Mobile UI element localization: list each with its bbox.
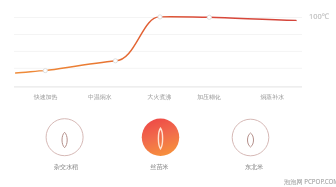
button[interactable]: Rice cooking temperature chart [0, 0, 336, 187]
